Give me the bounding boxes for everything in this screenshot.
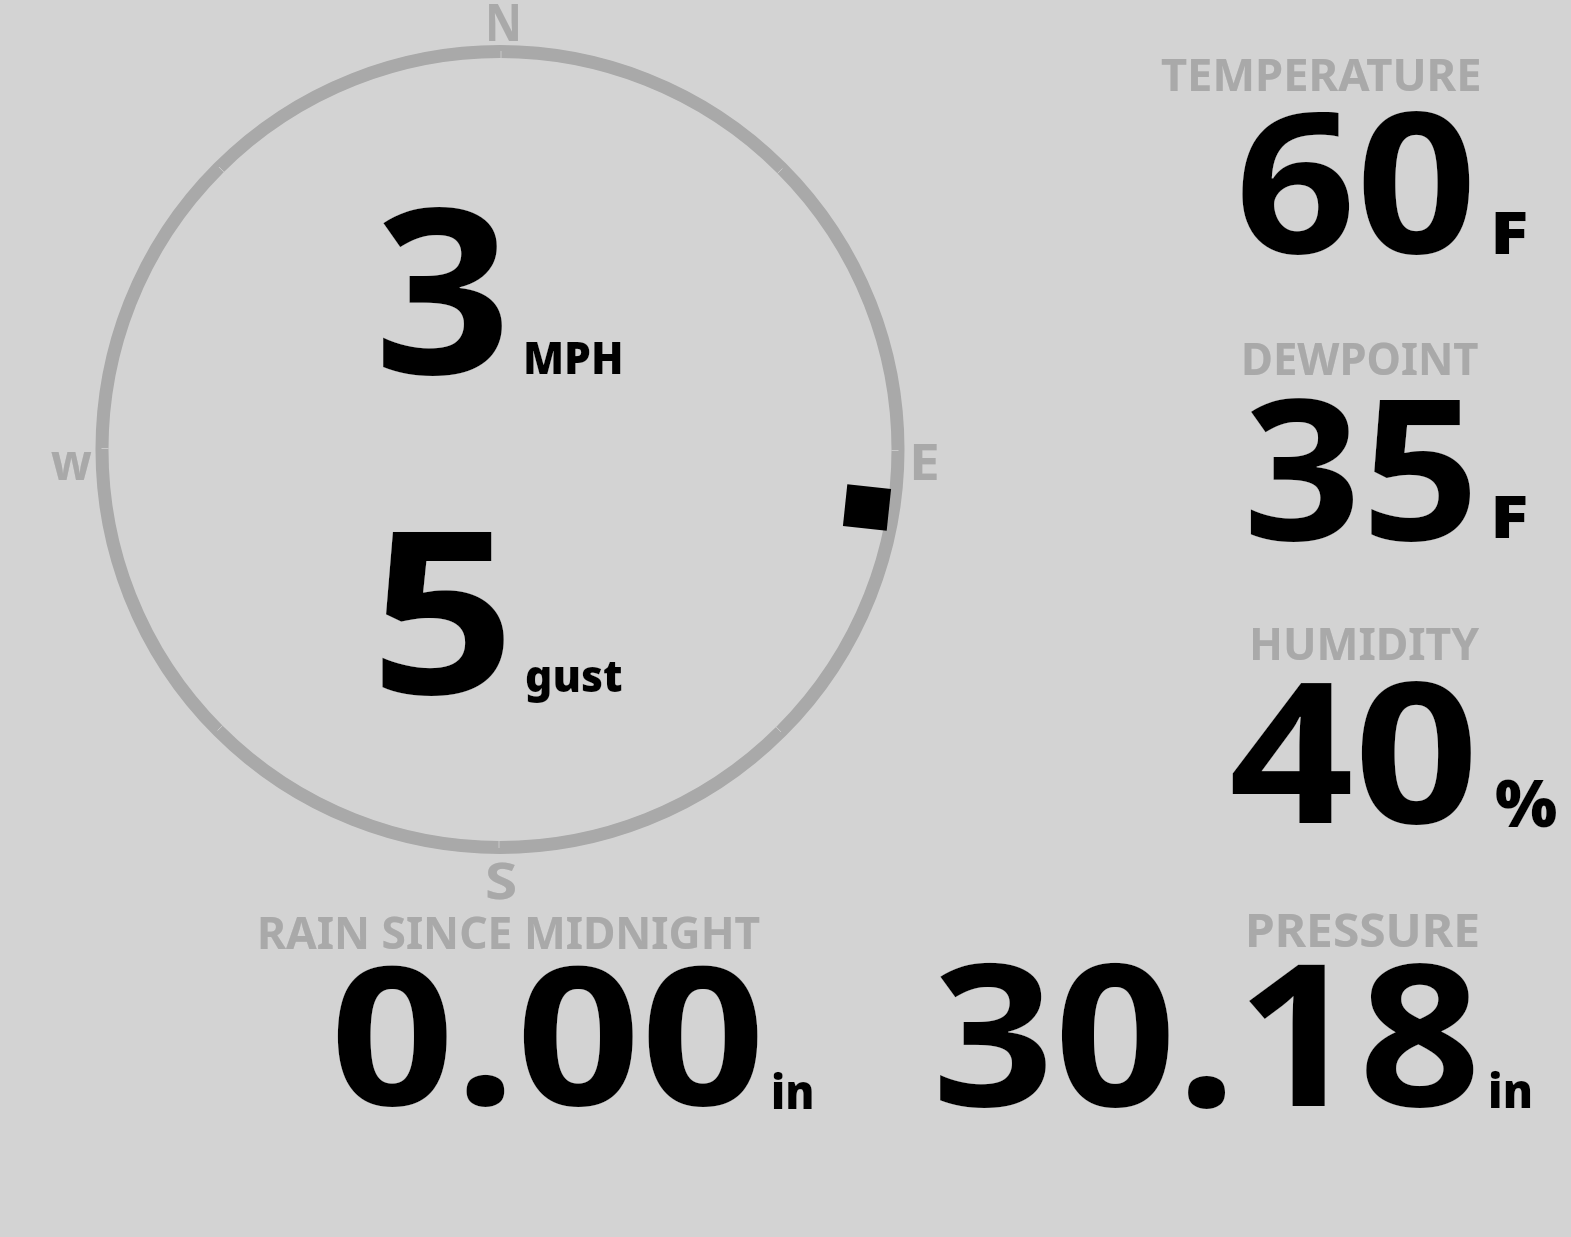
button[interactable]: Temperature 60 degrees F bbox=[1100, 40, 1560, 280]
button[interactable]: Dewpoint 35 degrees F bbox=[1100, 325, 1560, 565]
staticText: F bbox=[1490, 191, 1529, 271]
staticText: w bbox=[51, 427, 92, 495]
staticText: in bbox=[771, 1059, 815, 1123]
staticText: E bbox=[909, 427, 940, 495]
staticText: TEMPERATURE bbox=[1161, 42, 1482, 104]
staticText: MPH bbox=[523, 326, 624, 387]
staticText: S bbox=[485, 846, 518, 914]
staticText: 0.00 bbox=[330, 900, 766, 1162]
staticText: 40 bbox=[1229, 615, 1480, 881]
staticText: in bbox=[1488, 1058, 1533, 1122]
staticText: PRESSURE bbox=[1245, 898, 1480, 961]
staticText: N bbox=[485, 0, 523, 56]
button[interactable]: Rain since midnight 0.00 inches bbox=[230, 900, 830, 1120]
staticText: HUMIDITY bbox=[1249, 612, 1479, 673]
staticText: 3 bbox=[374, 128, 512, 441]
staticText: 35 bbox=[1243, 330, 1480, 597]
button[interactable]: Humidity 40 percent bbox=[1100, 610, 1560, 850]
staticText: 60 bbox=[1235, 43, 1478, 310]
staticText: F bbox=[1490, 475, 1529, 555]
button[interactable]: Pressure 30.18 inches bbox=[900, 895, 1540, 1115]
staticText: RAIN SINCE MIDNIGHT bbox=[257, 902, 761, 962]
staticText: 30.18 bbox=[932, 895, 1482, 1163]
staticText: DEWPOINT bbox=[1241, 327, 1479, 388]
staticText: gust bbox=[525, 645, 623, 705]
staticText: % bbox=[1495, 758, 1558, 847]
staticText: 5 bbox=[370, 452, 516, 760]
button[interactable]: Wind direction dial bbox=[95, 45, 905, 855]
